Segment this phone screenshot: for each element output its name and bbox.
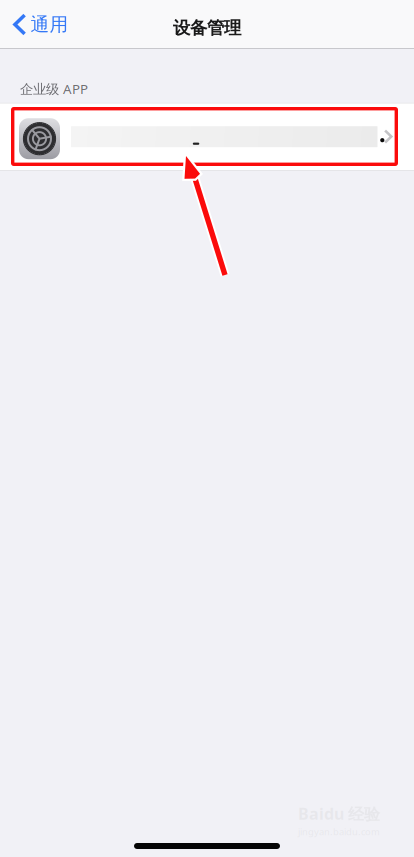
staticText: 通用 xyxy=(30,13,68,36)
staticText: 企业级 APP xyxy=(20,80,88,98)
button[interactable]: 企业级 APP 描述文件 xyxy=(0,103,414,171)
staticText: 设备管理 xyxy=(173,17,241,39)
button[interactable]: 通用 xyxy=(0,2,80,46)
staticText: Baidu 经验 xyxy=(298,803,380,824)
